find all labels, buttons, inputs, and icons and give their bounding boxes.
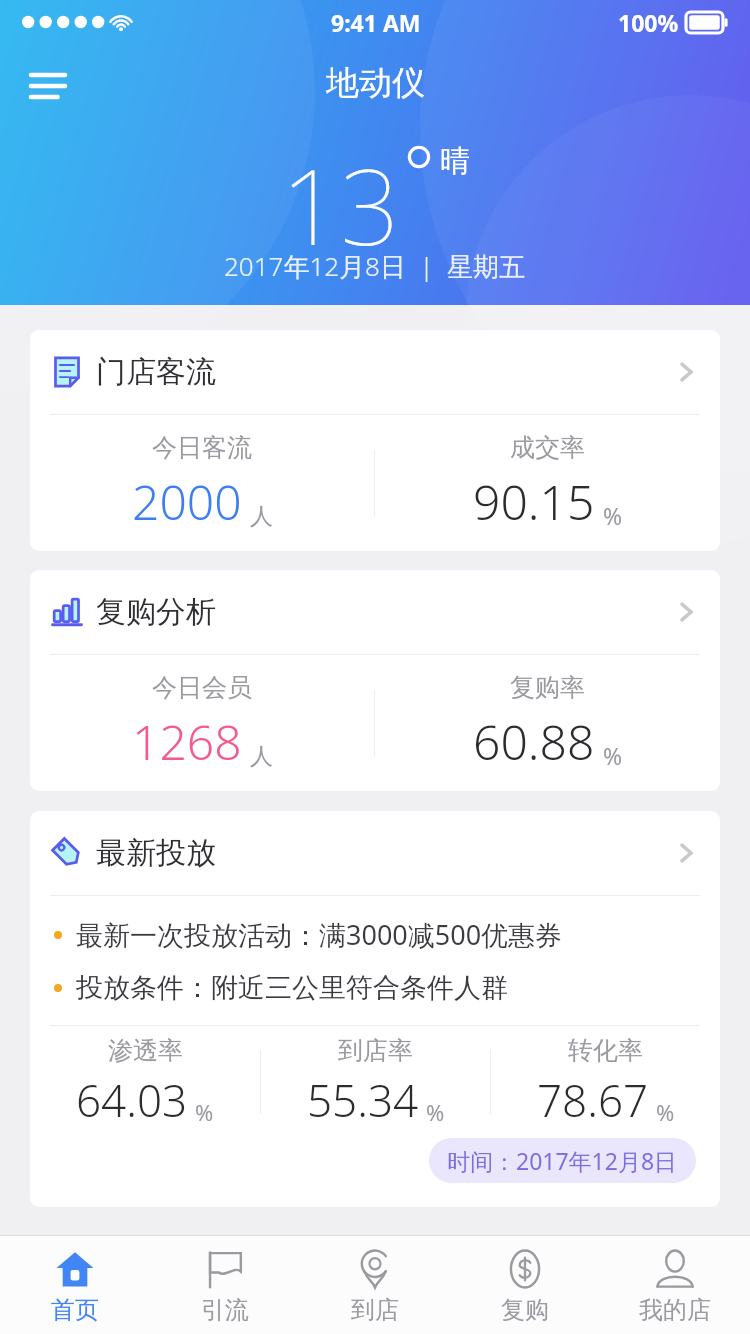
staticText: 转化率	[568, 1035, 643, 1066]
staticText: %	[426, 1097, 445, 1127]
staticText: 我的店	[639, 1295, 711, 1325]
staticText: 渗透率	[108, 1035, 183, 1066]
other: More	[670, 357, 700, 387]
button[interactable]: 我的店	[600, 1236, 750, 1334]
staticText: 2000	[132, 469, 242, 534]
staticText: 复购	[501, 1295, 549, 1325]
other: More	[670, 838, 700, 868]
staticText: 9:41 AM	[331, 7, 421, 38]
button[interactable]: 复购	[450, 1236, 600, 1334]
button[interactable]: 引流	[150, 1236, 300, 1334]
staticText: 今日客流	[152, 432, 252, 463]
button[interactable]: 最新投放	[30, 811, 720, 895]
staticText: 今日会员	[152, 672, 252, 703]
button[interactable]: Menu	[20, 58, 76, 114]
staticText: 门店客流	[96, 353, 216, 391]
staticText: 2017年12月8日 | 星期五	[224, 248, 526, 284]
staticText: 最新投放	[96, 834, 216, 872]
staticText: 到店率	[338, 1035, 413, 1066]
staticText: 90.15	[473, 469, 595, 534]
staticText: 复购率	[510, 672, 585, 703]
staticText: 成交率	[510, 432, 585, 463]
staticText: 64.03	[76, 1070, 188, 1130]
staticText: 13	[281, 134, 400, 276]
button[interactable]: 复购分析	[30, 570, 720, 654]
staticText: 78.67	[537, 1070, 649, 1130]
staticText: 100%	[618, 7, 679, 38]
staticText: 引流	[201, 1295, 249, 1325]
other: More	[670, 597, 700, 627]
button[interactable]: 首页	[0, 1236, 150, 1334]
staticText: 人	[250, 742, 273, 771]
staticText: 55.34	[307, 1070, 419, 1130]
staticText: %	[603, 740, 623, 771]
button[interactable]: 到店	[300, 1236, 450, 1334]
button[interactable]: 时间：2017年12月8日	[429, 1138, 696, 1183]
staticText: %	[656, 1097, 675, 1127]
staticText: 复购分析	[96, 593, 216, 631]
staticText: 时间：2017年12月8日	[447, 1145, 678, 1176]
staticText: 60.88	[473, 709, 595, 774]
staticText: 人	[250, 502, 273, 531]
staticText: 晴	[440, 142, 470, 180]
staticText: %	[195, 1097, 214, 1127]
button[interactable]: 门店客流	[30, 330, 720, 414]
staticText: 地动仪	[326, 62, 425, 104]
staticText: 1268	[132, 709, 242, 774]
staticText: %	[603, 500, 623, 531]
staticText: 最新一次投放活动：满3000减500优惠券	[76, 916, 563, 953]
staticText: 首页	[51, 1295, 99, 1325]
staticText: 到店	[351, 1295, 399, 1325]
staticText: 投放条件：附近三公里符合条件人群	[76, 971, 508, 1005]
